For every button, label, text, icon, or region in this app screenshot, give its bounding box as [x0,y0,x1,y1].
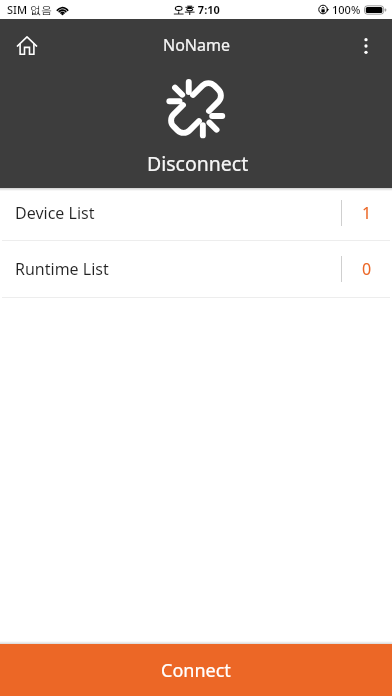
button[interactable]: Runtime List [0,241,392,297]
staticText: 0 [362,258,372,280]
staticText: Disconnect [147,150,249,177]
staticText: Runtime List [15,258,109,280]
staticText: Connect [161,658,231,683]
staticText: SIM 없음 [7,2,52,17]
button[interactable]: Connect [0,644,392,696]
button[interactable]: More options [345,25,386,66]
staticText: 오후 7:10 [173,2,220,17]
button[interactable]: Device List [0,188,392,240]
button[interactable]: Home [6,25,47,66]
staticText: 100% [332,2,361,17]
staticText: Device List [15,202,95,224]
staticText: 1 [362,202,372,224]
staticText: NoName [163,34,230,56]
